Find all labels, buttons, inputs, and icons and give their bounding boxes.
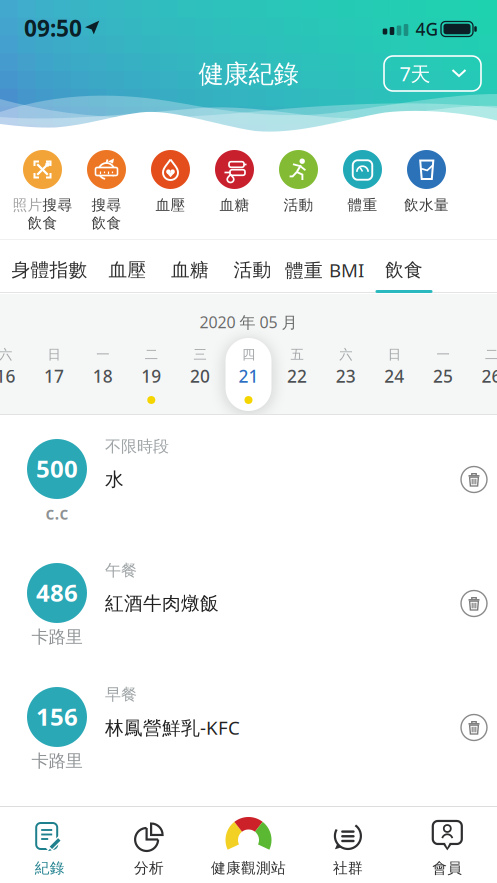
staticText: 24 — [384, 364, 404, 387]
staticText: 血壓 — [108, 258, 146, 281]
staticText: 五 — [291, 346, 304, 363]
staticText: 20 — [190, 364, 210, 387]
button[interactable]: 血壓 — [108, 258, 146, 281]
button[interactable]: 飲水量 — [394, 142, 458, 214]
staticText: 飲食 — [27, 214, 57, 232]
button[interactable]: 二 — [127, 338, 176, 411]
button[interactable]: 四 — [224, 338, 273, 411]
staticText: 7天 — [399, 60, 430, 87]
button[interactable]: 活動 — [233, 258, 271, 281]
staticText: 飲水量 — [404, 196, 449, 214]
button[interactable]: 照片 — [10, 142, 74, 232]
staticText: 會員 — [432, 859, 462, 877]
staticText: 血壓 — [155, 196, 185, 214]
staticText: 卡路里 — [31, 626, 82, 648]
staticText: 500 — [36, 453, 78, 484]
staticText: 搜尋 — [42, 196, 72, 214]
staticText: 日 — [48, 346, 61, 363]
staticText: 一 — [436, 346, 449, 363]
button[interactable]: 血壓 — [138, 142, 202, 214]
staticText: 健康觀測站 — [211, 859, 286, 877]
button[interactable]: 分析 — [99, 812, 199, 882]
staticText: 健康紀錄 — [198, 58, 298, 89]
button[interactable]: 飲食 — [385, 258, 423, 281]
button[interactable]: 日 — [30, 338, 78, 411]
staticText: 日 — [388, 346, 401, 363]
button[interactable]: 血糖 — [171, 258, 209, 281]
staticText: 23 — [336, 364, 356, 387]
staticText: 搜尋 — [91, 196, 121, 214]
button[interactable]: 搜尋 — [74, 142, 138, 232]
staticText: 486 — [36, 577, 78, 608]
staticText: 六 — [0, 346, 12, 363]
staticText: 09:50 — [24, 13, 82, 43]
staticText: 血糖 — [171, 258, 209, 281]
staticText: 156 — [36, 701, 78, 732]
button[interactable]: 健康觀測站 — [199, 812, 298, 882]
staticText: 身體指數 — [11, 258, 87, 281]
button[interactable]: Delete — [461, 714, 487, 740]
staticText: 體重 — [347, 196, 377, 214]
staticText: 照片 — [12, 196, 42, 214]
button[interactable]: 三 — [176, 338, 224, 411]
staticText: 17 — [44, 364, 64, 387]
button[interactable]: 7天 — [384, 56, 481, 91]
staticText: 體重 BMI — [285, 258, 364, 282]
button[interactable]: 日 — [370, 338, 419, 411]
button[interactable]: 身體指數 — [11, 258, 87, 281]
staticText: 18 — [93, 364, 113, 387]
button[interactable]: 一 — [78, 338, 127, 411]
button[interactable]: 五 — [273, 338, 321, 411]
staticText: 二 — [485, 346, 497, 363]
staticText: 16 — [0, 364, 15, 387]
staticText: 社群 — [333, 859, 363, 877]
button[interactable]: 六 — [0, 338, 30, 411]
staticText: 21 — [238, 364, 258, 387]
staticText: 活動 — [233, 258, 271, 281]
staticText: 六 — [339, 346, 352, 363]
button[interactable]: 六 — [321, 338, 370, 411]
staticText: 分析 — [134, 859, 164, 877]
staticText: 一 — [96, 346, 109, 363]
button[interactable]: 活動 — [266, 142, 330, 214]
staticText: 林鳳營鮮乳-KFC — [105, 715, 240, 740]
staticText: 紅酒牛肉燉飯 — [105, 592, 219, 615]
staticText: 活動 — [283, 196, 313, 214]
staticText: 午餐 — [105, 561, 137, 580]
staticText: 2020 年 05 月 — [199, 311, 297, 333]
staticText: 四 — [242, 346, 255, 363]
button[interactable]: 二 — [467, 338, 497, 411]
staticText: 22 — [287, 364, 307, 387]
staticText: 4G — [415, 17, 438, 40]
button[interactable]: 一 — [419, 338, 467, 411]
button[interactable]: 會員 — [398, 812, 497, 882]
staticText: 26 — [481, 364, 497, 387]
staticText: 卡路里 — [31, 750, 82, 772]
staticText: 血糖 — [219, 196, 249, 214]
staticText: 25 — [433, 364, 453, 387]
staticText: 飲食 — [91, 214, 121, 232]
staticText: c.c — [45, 501, 68, 524]
staticText: 早餐 — [105, 685, 137, 704]
staticText: 二 — [145, 346, 158, 363]
button[interactable]: 體重 — [330, 142, 394, 214]
staticText: 不限時段 — [105, 437, 169, 456]
staticText: 19 — [141, 364, 161, 387]
button[interactable]: 社群 — [298, 812, 398, 882]
button[interactable]: Delete — [461, 466, 487, 492]
button[interactable]: 血糖 — [202, 142, 266, 214]
button[interactable]: Delete — [461, 590, 487, 616]
button[interactable]: 體重 BMI — [285, 258, 364, 282]
staticText: 水 — [105, 468, 124, 491]
staticText: 紀錄 — [35, 859, 65, 877]
staticText: 飲食 — [385, 258, 423, 281]
button[interactable]: 紀錄 — [0, 812, 99, 882]
staticText: 三 — [193, 346, 206, 363]
